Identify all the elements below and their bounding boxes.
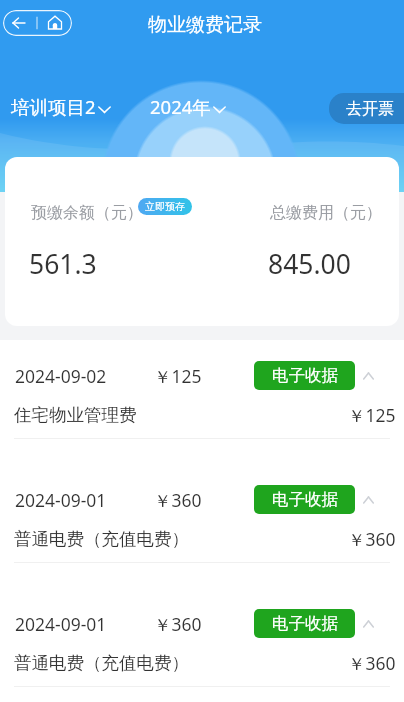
staticText: 电子收据	[272, 613, 338, 634]
staticText: ￥125	[348, 403, 396, 427]
other: Collapse	[363, 493, 374, 507]
staticText: 561.3	[29, 246, 97, 282]
button[interactable]: 2024-09-02	[0, 352, 404, 476]
staticText: 2024年	[150, 94, 211, 119]
staticText: 2024-09-01	[15, 488, 107, 512]
button[interactable]: 电子收据	[254, 609, 355, 638]
button[interactable]: 电子收据	[254, 485, 355, 514]
staticText: 电子收据	[272, 365, 338, 386]
staticText: 物业缴费记录	[148, 13, 262, 37]
other: Collapse	[363, 617, 374, 631]
staticText: ￥360	[154, 612, 202, 636]
staticText: 电子收据	[272, 489, 338, 510]
staticText: 2024-09-02	[15, 364, 107, 388]
staticText: 845.00	[268, 246, 351, 282]
staticText: 普通电费（充值电费）	[14, 652, 189, 674]
staticText: 2024-09-01	[15, 612, 107, 636]
staticText: 住宅物业管理费	[14, 404, 137, 426]
button[interactable]: 2024-09-01	[0, 476, 404, 600]
staticText: ￥360	[348, 651, 396, 675]
button[interactable]: 电子收据	[254, 361, 355, 390]
staticText: 培训项目2	[11, 94, 96, 119]
button[interactable]: 培训项目2	[11, 94, 111, 119]
staticText: ￥125	[154, 364, 202, 388]
staticText: 立即预存	[145, 200, 185, 213]
staticText: ￥360	[348, 527, 396, 551]
staticText: ￥360	[154, 488, 202, 512]
button[interactable]: 立即预存	[138, 198, 192, 215]
button[interactable]: Back and Home	[3, 10, 72, 36]
staticText: 去开票	[346, 99, 394, 119]
other: Collapse	[363, 369, 374, 383]
button[interactable]: 2024-09-01	[0, 600, 404, 702]
button[interactable]: 2024年	[150, 94, 226, 119]
staticText: 总缴费用（元）	[270, 203, 382, 223]
staticText: 预缴余额（元）	[31, 203, 143, 223]
staticText: 普通电费（充值电费）	[14, 528, 189, 550]
button[interactable]: 去开票	[329, 93, 404, 124]
